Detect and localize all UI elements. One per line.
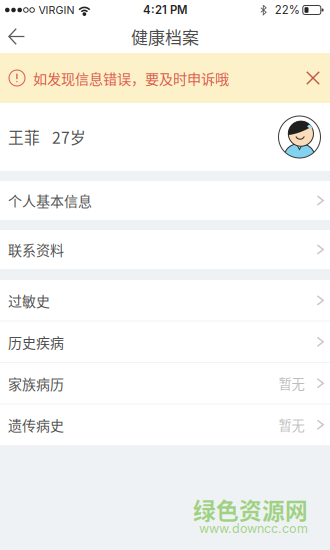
staticText: 如发现信息错误，要及时申诉哦 xyxy=(33,68,229,88)
button[interactable]: 历史疾病 xyxy=(0,321,330,362)
staticText: 过敏史 xyxy=(8,290,50,310)
button[interactable]: 遗传病史 xyxy=(0,404,330,445)
button[interactable]: 家族病历 xyxy=(0,363,330,404)
staticText: 家族病历 xyxy=(8,373,64,393)
staticText: 绿色资源网 xyxy=(193,493,308,526)
button[interactable]: Back xyxy=(0,20,41,53)
button[interactable]: Close xyxy=(294,53,330,103)
staticText: 个人基本信息 xyxy=(8,190,92,211)
button[interactable]: 过敏史 xyxy=(0,280,330,321)
button[interactable]: 王菲 27岁 xyxy=(0,103,330,171)
button[interactable]: 联系资料 xyxy=(0,230,330,269)
staticText: 4:21 PM xyxy=(143,3,187,17)
staticText: 联系资料 xyxy=(8,239,64,260)
staticText: 暂无 xyxy=(279,374,305,393)
staticText: 暂无 xyxy=(279,415,305,434)
button[interactable]: 个人基本信息 xyxy=(0,181,330,220)
staticText: 王菲 27岁 xyxy=(8,126,86,148)
staticText: 健康档案 xyxy=(131,24,199,49)
staticText: www.downcc.com xyxy=(199,521,308,536)
staticText: VIRGIN xyxy=(38,3,74,16)
staticText: 遗传病史 xyxy=(8,415,64,435)
staticText: 22% xyxy=(275,3,300,17)
staticText: 历史疾病 xyxy=(8,332,64,352)
